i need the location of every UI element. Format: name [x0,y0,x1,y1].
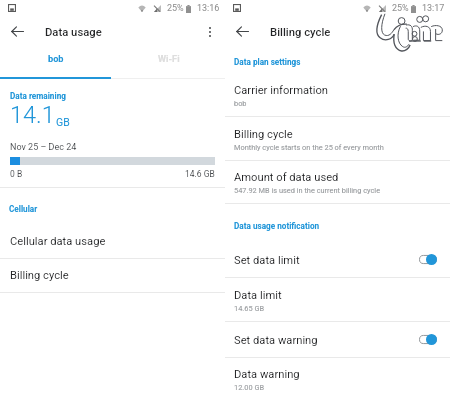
button[interactable]: Data warning [225,358,450,400]
button[interactable]: Data limit [225,278,450,321]
staticText: 13:17 [422,3,445,14]
staticText: Data usage [45,26,102,39]
staticText: Billing cycle [270,26,331,39]
staticText: 14.6 GB [185,169,215,179]
staticText: 13:16 [197,3,220,14]
staticText: 12.00 GB [234,383,265,392]
staticText: 25% [167,3,184,14]
staticText: Data plan settings [234,57,301,67]
button[interactable]: More options [195,17,225,46]
button[interactable]: Set data warning [225,322,450,357]
staticText: 14.1 [10,101,55,129]
staticText: Cellular data usage [10,235,106,248]
staticText: Data usage notification [234,221,320,231]
staticText: Data warning [234,368,300,381]
staticText: GB [56,116,70,128]
button[interactable]: Toggle on [419,254,437,265]
button[interactable]: bob [0,46,112,79]
staticText: Nov 25 – Dec 24 [10,142,77,153]
staticText: Data limit [234,289,282,302]
staticText: 0 B [10,169,23,179]
staticText: Data remaining [10,91,66,101]
staticText: Billing cycle [10,269,69,282]
staticText: bob [48,53,64,64]
staticText: Monthly cycle starts on the 25 of every … [234,143,384,152]
staticText: Set data warning [234,334,318,347]
staticText: 25% [392,3,409,14]
staticText: Cellular [9,204,38,214]
button[interactable]: Back [2,17,32,46]
staticText: Billing cycle [234,128,293,141]
staticText: Set data limit [234,254,300,267]
button[interactable]: Amount of data used [225,161,450,203]
staticText: Wi-Fi [158,53,180,64]
staticText: 547.92 MB is used in the current billing… [234,186,381,195]
staticText: Carrier information [234,84,328,97]
button[interactable]: Toggle on [419,334,437,345]
button[interactable]: Billing cycle [0,259,225,292]
button[interactable]: Set data limit [225,241,450,277]
button[interactable]: Carrier information [225,74,450,116]
staticText: 14.65 GB [234,304,265,313]
staticText: Amount of data used [234,171,339,184]
staticText: bob [234,99,247,108]
button[interactable]: Wi-Fi [112,46,225,79]
button[interactable]: Billing cycle [225,117,450,160]
button[interactable]: Back [227,17,257,46]
button[interactable]: Cellular data usage [0,225,225,258]
